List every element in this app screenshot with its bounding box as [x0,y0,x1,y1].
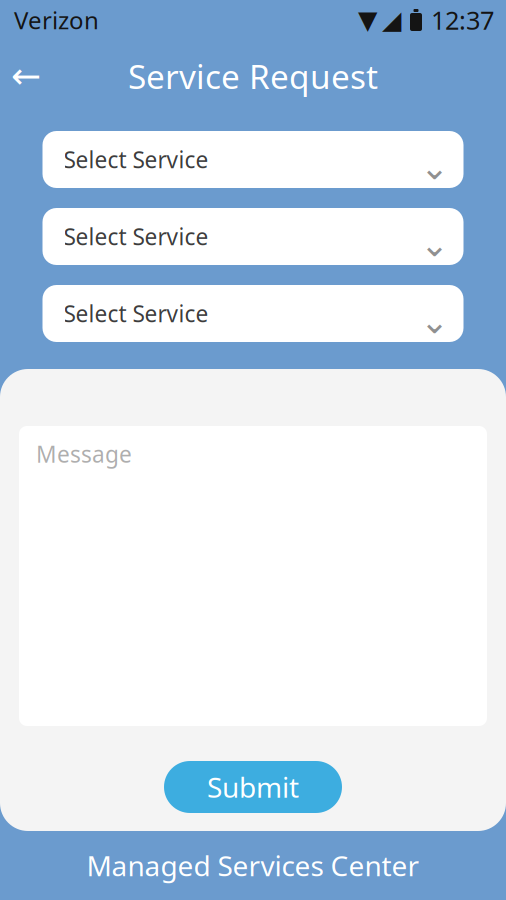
staticText: Service Request [128,54,378,98]
staticText: Submit [207,768,299,806]
button[interactable]: Select Service [42,208,463,265]
staticText: Select Service [63,221,208,251]
staticText: Select Service [63,144,208,174]
button[interactable]: Select Service [42,285,463,342]
staticText: ▼ [358,6,377,34]
button[interactable]: Select Service [42,131,463,188]
staticText: Message [36,439,132,469]
staticText: Managed Services Center [86,847,419,884]
staticText: ⌄ [420,301,449,341]
staticText: ⌄ [420,224,449,264]
staticText: 12:37 [431,3,494,37]
staticText: ← [11,56,41,96]
staticText: Select Service [63,298,208,328]
button[interactable]: Managed Services Center [0,831,506,900]
staticText: ⌄ [420,147,449,187]
button[interactable]: Back [0,54,52,98]
staticText: Verizon [14,4,99,36]
staticText: ◢ [382,6,401,34]
button[interactable]: Submit [164,761,342,813]
